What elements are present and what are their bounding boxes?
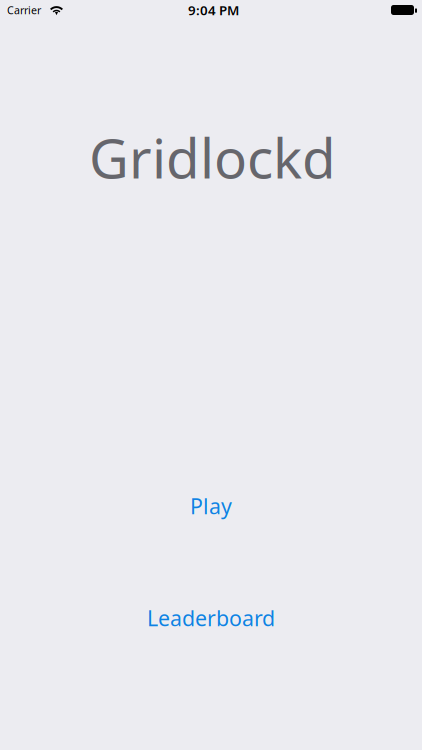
button[interactable]: Play	[0, 484, 422, 528]
button[interactable]: Leaderboard	[0, 596, 422, 640]
staticText: 9:04 PM	[188, 1, 239, 19]
staticText: Play	[190, 492, 232, 520]
staticText: Gridlockd	[89, 121, 336, 194]
staticText: Leaderboard	[147, 604, 275, 632]
staticText: Carrier	[7, 3, 41, 17]
